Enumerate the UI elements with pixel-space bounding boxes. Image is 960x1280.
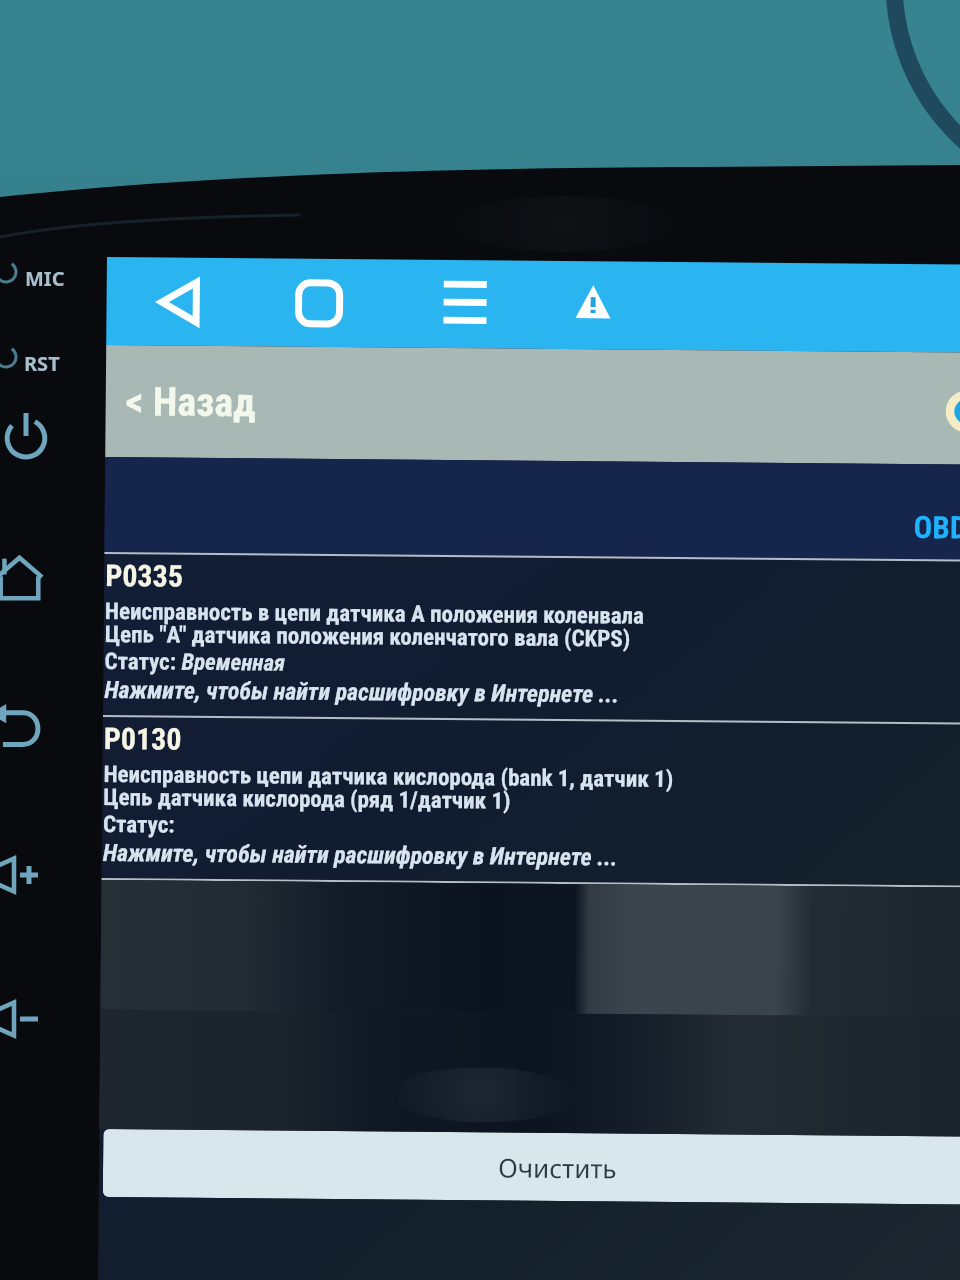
button[interactable]: < Назад <box>105 345 960 465</box>
staticText: < Назад <box>125 378 257 426</box>
button[interactable]: Очистить <box>103 1129 960 1205</box>
button[interactable]: Back <box>0 704 44 748</box>
staticText: Временная <box>181 649 285 677</box>
staticText: Нажмите, чтобы найти расшифровку в Интер… <box>103 839 618 871</box>
button[interactable]: Power <box>6 411 46 459</box>
button[interactable]: Volume down <box>0 1001 42 1037</box>
button[interactable]: RST <box>24 350 60 377</box>
staticText: Нажмите, чтобы найти расшифровку в Интер… <box>104 676 619 708</box>
button[interactable]: Menu <box>423 257 507 345</box>
button[interactable]: Warning <box>555 257 631 346</box>
button[interactable]: P0130 <box>102 715 960 886</box>
staticText: P0335 <box>105 558 183 594</box>
button[interactable]: Home <box>274 258 364 347</box>
button[interactable]: Home <box>0 556 43 600</box>
button[interactable]: MIC <box>25 265 65 292</box>
button[interactable]: Refresh <box>945 390 960 433</box>
staticText: Цепь датчика кислорода (ряд 1/датчик 1) <box>103 784 511 815</box>
staticText: OBD II <box>913 509 960 546</box>
staticText: P0130 <box>104 721 182 757</box>
staticText: Статус: <box>104 648 182 676</box>
button[interactable]: P0335 <box>103 552 960 723</box>
staticText: Неисправность цепи датчика кислорода (ba… <box>103 761 674 793</box>
button[interactable]: Volume up <box>0 857 42 893</box>
staticText: Очистить <box>498 1149 617 1185</box>
staticText: Цепь "A" датчика положения коленчатого в… <box>105 621 631 653</box>
staticText: Неисправность в цепи датчика A положения… <box>105 598 645 630</box>
button[interactable]: Back <box>135 257 223 346</box>
staticText: Статус: <box>103 811 180 839</box>
